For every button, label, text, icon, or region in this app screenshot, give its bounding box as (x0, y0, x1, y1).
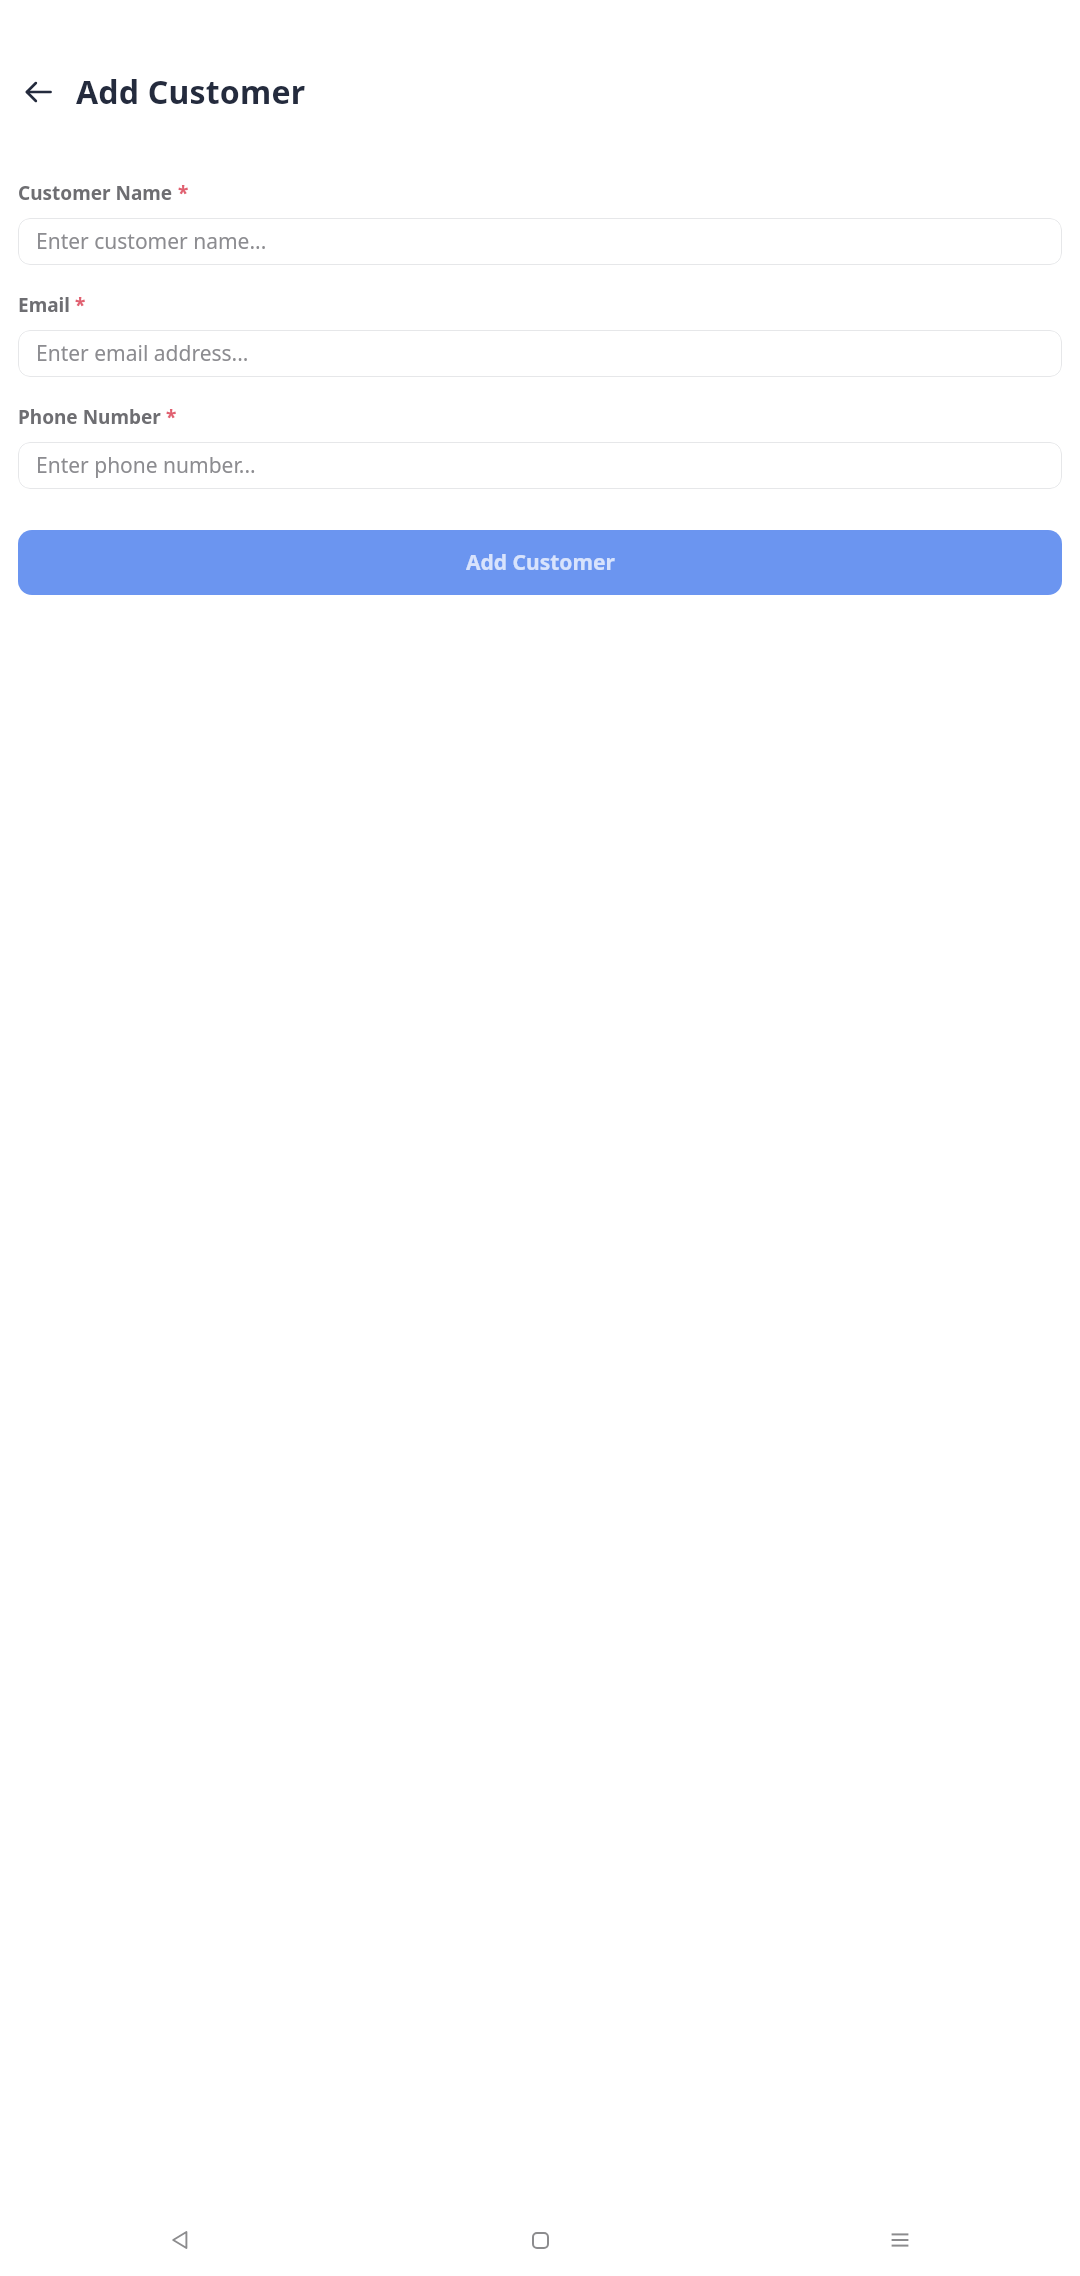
button[interactable]: Recent apps (720, 2204, 1080, 2276)
button[interactable]: Enter customer name... (18, 218, 1062, 265)
button[interactable]: Enter email address... (18, 330, 1062, 377)
button[interactable]: Home (360, 2204, 720, 2276)
button[interactable]: Enter phone number... (18, 442, 1062, 489)
staticText: Customer Name (18, 180, 173, 206)
button[interactable]: Back (0, 2204, 360, 2276)
staticText: Enter customer name... (36, 227, 267, 256)
staticText: Enter phone number... (36, 451, 256, 480)
staticText: Add Customer (76, 70, 306, 114)
staticText: * (166, 404, 177, 430)
staticText: Phone Number (18, 404, 161, 430)
button[interactable]: Add Customer (18, 530, 1062, 595)
button[interactable]: Back (14, 68, 62, 116)
staticText: Add Customer (466, 548, 615, 577)
staticText: * (178, 180, 189, 206)
staticText: Enter email address... (36, 339, 249, 368)
staticText: * (75, 292, 86, 318)
staticText: Email (18, 292, 70, 318)
